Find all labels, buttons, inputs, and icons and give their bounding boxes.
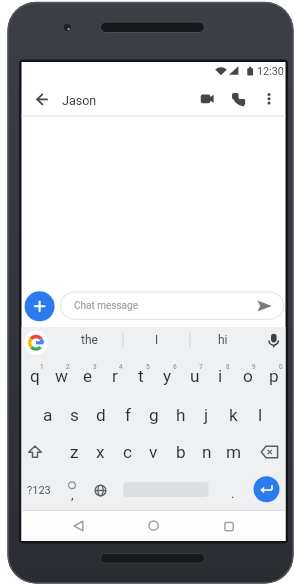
- button[interactable]: .: [223, 480, 243, 506]
- button[interactable]: b: [167, 437, 194, 467]
- staticText: w: [55, 366, 68, 386]
- staticText: p: [269, 366, 279, 386]
- staticText: 7: [199, 363, 203, 371]
- button[interactable]: [254, 476, 280, 502]
- button[interactable]: v: [140, 437, 167, 467]
- staticText: k: [229, 405, 238, 425]
- button[interactable]: n: [193, 437, 220, 467]
- button[interactable]: [25, 291, 55, 321]
- staticText: ?123: [27, 484, 51, 497]
- staticText: h: [176, 405, 186, 425]
- staticText: v: [149, 442, 158, 462]
- button[interactable]: [23, 330, 49, 356]
- button[interactable]: o: [234, 361, 261, 391]
- button[interactable]: a: [34, 400, 61, 430]
- staticText: f: [125, 405, 131, 425]
- staticText: 3: [93, 363, 97, 371]
- button[interactable]: ,: [62, 481, 82, 507]
- button[interactable]: z: [61, 437, 88, 467]
- button[interactable]: m: [220, 437, 247, 467]
- button[interactable]: p: [260, 361, 287, 391]
- staticText: g: [149, 405, 159, 425]
- staticText: d: [96, 405, 106, 425]
- staticText: m: [226, 442, 242, 462]
- button[interactable]: w: [48, 361, 75, 391]
- staticText: n: [202, 442, 212, 462]
- staticText: l: [258, 405, 263, 425]
- staticText: u: [190, 366, 200, 386]
- button[interactable]: s: [61, 400, 88, 430]
- button[interactable]: [131, 512, 175, 540]
- staticText: 4: [119, 363, 123, 371]
- button[interactable]: [61, 292, 284, 319]
- staticText: .: [231, 486, 235, 501]
- button[interactable]: h: [167, 400, 194, 430]
- button[interactable]: q: [21, 361, 48, 391]
- button[interactable]: ?123: [22, 477, 56, 503]
- staticText: y: [163, 366, 172, 386]
- button[interactable]: [57, 512, 101, 540]
- staticText: Chat message: [74, 300, 138, 312]
- button[interactable]: [250, 294, 278, 318]
- button[interactable]: [30, 87, 54, 111]
- button[interactable]: e: [74, 361, 101, 391]
- staticText: the: [81, 333, 98, 347]
- staticText: 12:30: [257, 65, 284, 78]
- staticText: 0: [279, 363, 283, 371]
- button[interactable]: the: [57, 327, 121, 353]
- staticText: Jason: [62, 93, 97, 108]
- staticText: t: [138, 366, 144, 386]
- button[interactable]: k: [220, 400, 247, 430]
- button[interactable]: hi: [191, 327, 255, 353]
- button[interactable]: f: [114, 400, 141, 430]
- button[interactable]: d: [87, 400, 114, 430]
- staticText: q: [30, 366, 40, 386]
- staticText: 2: [66, 363, 70, 371]
- staticText: z: [70, 442, 79, 462]
- staticText: i: [218, 366, 223, 386]
- button[interactable]: [22, 438, 50, 466]
- button[interactable]: [88, 478, 113, 503]
- button[interactable]: [207, 512, 251, 540]
- staticText: e: [83, 366, 93, 386]
- button[interactable]: [258, 87, 280, 111]
- button[interactable]: y: [154, 361, 181, 391]
- button[interactable]: i: [207, 361, 234, 391]
- staticText: 8: [226, 363, 230, 371]
- staticText: s: [70, 405, 79, 425]
- staticText: ,: [71, 487, 74, 502]
- staticText: o: [243, 366, 253, 386]
- button[interactable]: l: [247, 400, 274, 430]
- staticText: 1: [40, 363, 44, 371]
- staticText: 5: [146, 363, 150, 371]
- staticText: b: [176, 442, 186, 462]
- staticText: hi: [218, 333, 228, 347]
- staticText: a: [43, 405, 53, 425]
- staticText: 6: [173, 363, 177, 371]
- staticText: 9: [252, 363, 256, 371]
- button[interactable]: [226, 87, 250, 111]
- button[interactable]: c: [114, 437, 141, 467]
- button[interactable]: u: [181, 361, 208, 391]
- button[interactable]: [260, 328, 287, 354]
- button[interactable]: r: [101, 361, 128, 391]
- button[interactable]: [255, 438, 285, 466]
- staticText: j: [204, 405, 209, 425]
- staticText: r: [112, 366, 118, 386]
- staticText: x: [96, 442, 105, 462]
- button[interactable]: j: [193, 400, 220, 430]
- button[interactable]: [195, 87, 219, 111]
- button[interactable]: g: [140, 400, 167, 430]
- button[interactable]: x: [87, 437, 114, 467]
- button[interactable]: I: [125, 327, 189, 353]
- button[interactable]: t: [127, 361, 154, 391]
- staticText: I: [155, 333, 159, 347]
- staticText: c: [123, 442, 132, 462]
